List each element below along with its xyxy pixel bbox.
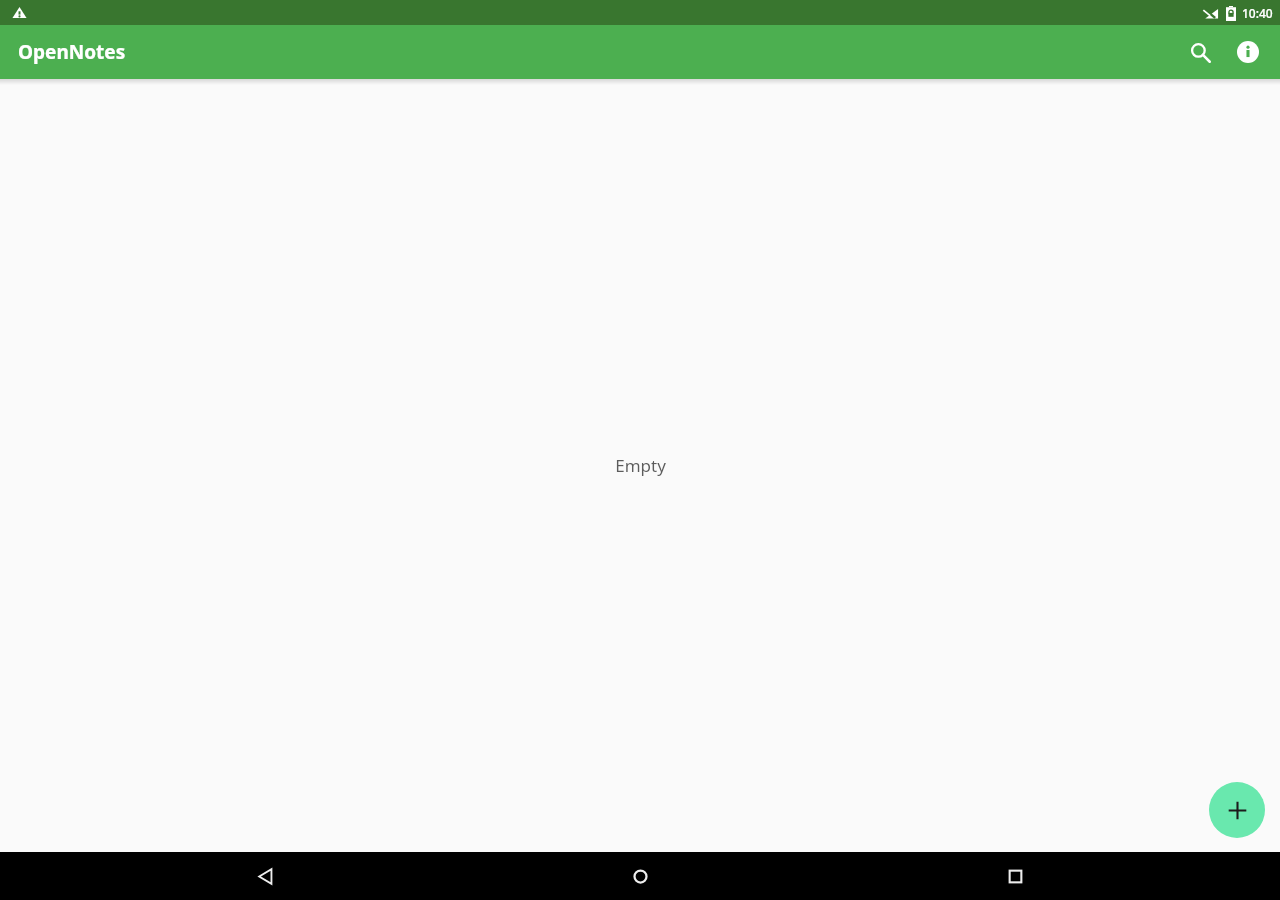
staticText: 10:40 [1242, 5, 1273, 21]
button[interactable]: Back [241, 852, 289, 900]
staticText: Empty [615, 454, 666, 477]
button[interactable]: About [1224, 28, 1272, 76]
staticText: OpenNotes [18, 39, 126, 65]
button[interactable]: Search [1176, 28, 1224, 76]
button[interactable]: Home [616, 852, 664, 900]
button[interactable]: Add note [1209, 782, 1265, 838]
button[interactable]: Recent apps [991, 852, 1039, 900]
